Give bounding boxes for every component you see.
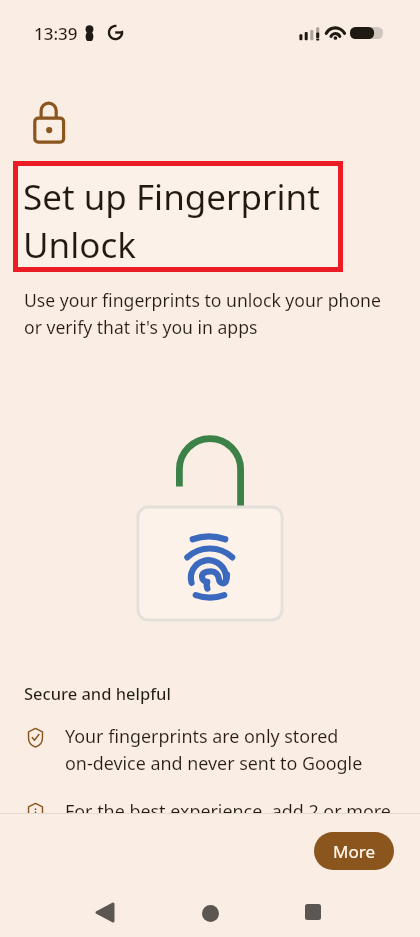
staticText: Secure and helpful (24, 682, 171, 704)
staticText: For the best experience, add 2 or more (65, 799, 395, 813)
staticText: Your fingerprints are only stored on-dev… (65, 724, 366, 775)
staticText: Set up Fingerprint Unlock (23, 173, 343, 268)
staticText: More (333, 840, 375, 863)
button[interactable]: Back (81, 888, 129, 936)
button[interactable]: Recents (289, 888, 337, 936)
staticText: Use your fingerprints to unlock your pho… (24, 288, 396, 339)
staticText: 13:39 (34, 22, 78, 45)
button[interactable]: Home (186, 889, 234, 937)
button[interactable]: More (314, 832, 394, 870)
